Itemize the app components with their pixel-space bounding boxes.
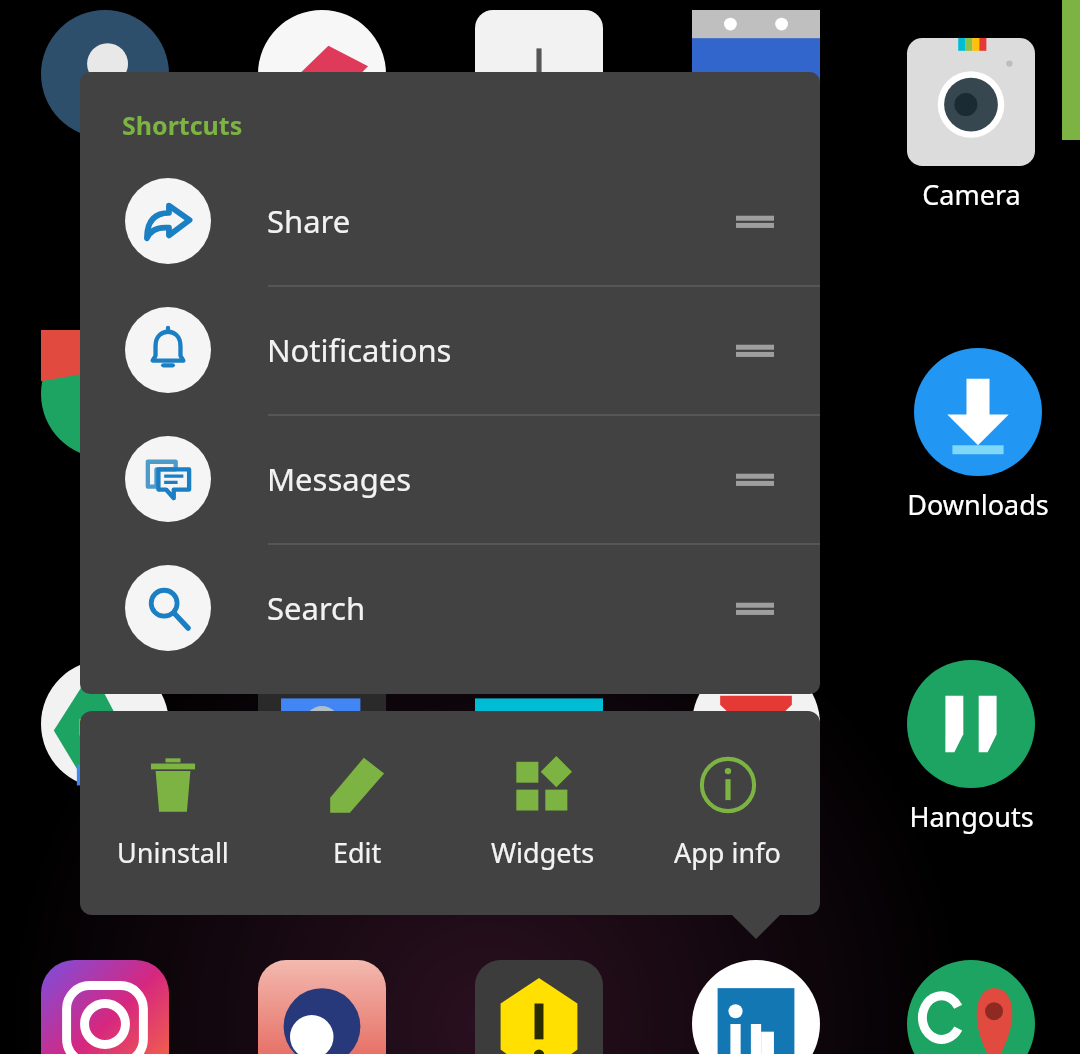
staticText: Share	[267, 200, 351, 242]
staticText: Widgets	[491, 834, 595, 871]
button[interactable]: Search	[80, 543, 820, 672]
staticText: Camera	[922, 176, 1021, 213]
staticText: Edit	[333, 834, 382, 871]
staticText: Hangouts	[909, 798, 1034, 835]
button[interactable]: App info	[635, 711, 820, 915]
staticText: Messages	[267, 458, 412, 500]
button[interactable]: Uninstall	[80, 711, 265, 915]
staticText: Notifications	[267, 329, 452, 371]
button[interactable]: Share	[80, 156, 820, 285]
button[interactable]: Notifications	[80, 285, 820, 414]
staticText: Search	[267, 587, 366, 629]
button[interactable]: Widgets	[450, 711, 635, 915]
button[interactable]: Messages	[80, 414, 820, 543]
staticText: App info	[674, 834, 781, 871]
staticText: Shortcuts	[122, 108, 243, 142]
staticText: Uninstall	[117, 834, 229, 871]
staticText: Downloads	[907, 486, 1049, 523]
button[interactable]: Edit	[265, 711, 450, 915]
